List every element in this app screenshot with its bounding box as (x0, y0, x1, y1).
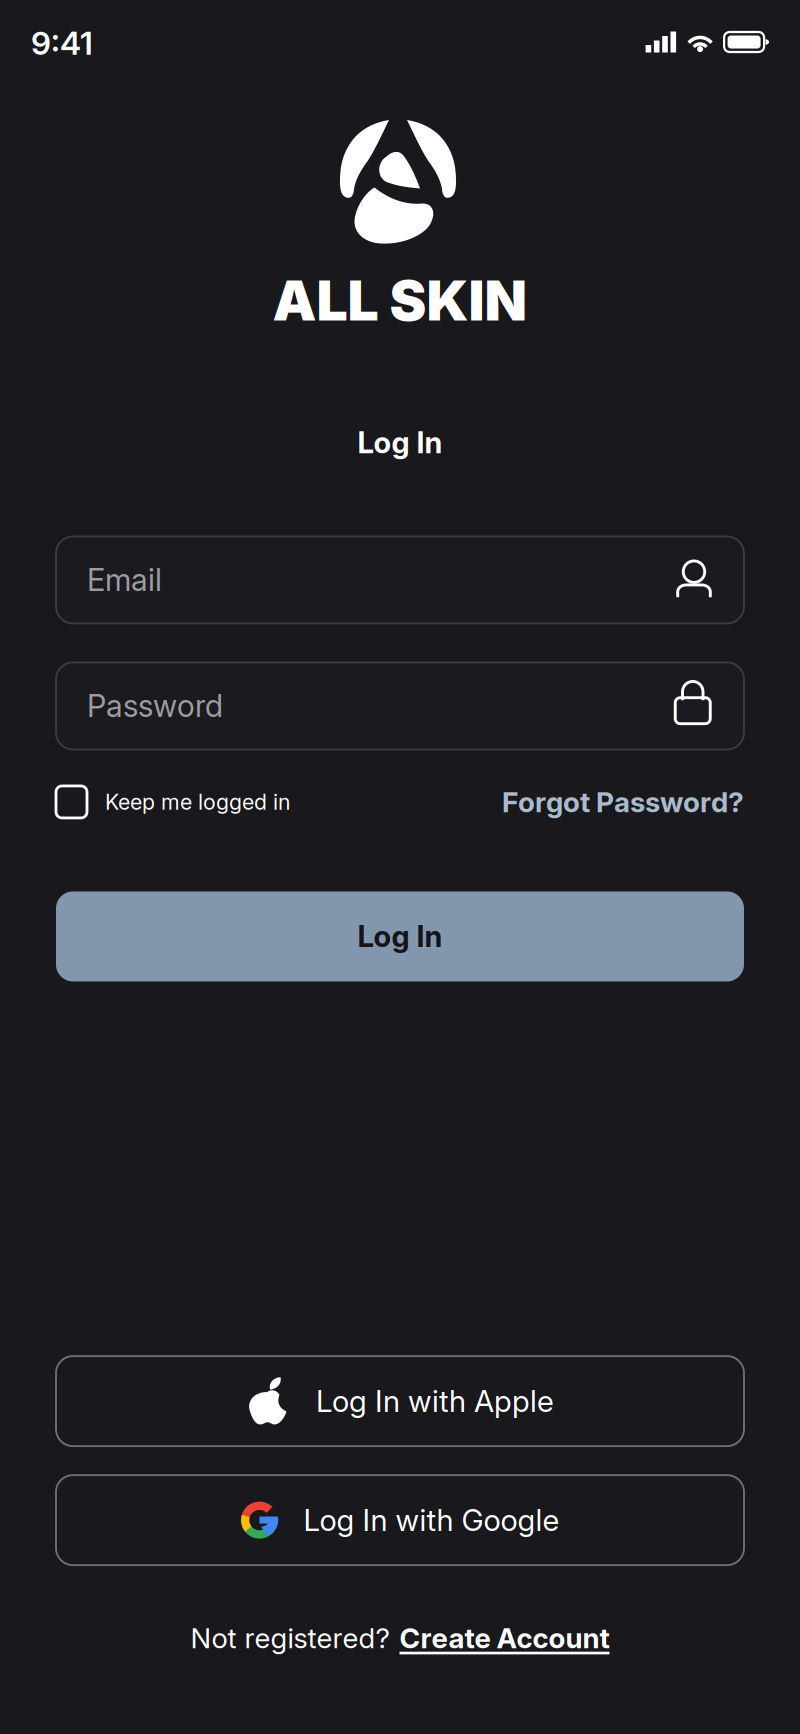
staticText: 9:41 (31, 24, 93, 62)
staticText: Email (87, 561, 162, 598)
staticText: Create Account (399, 1621, 609, 1655)
staticText: Password (87, 687, 223, 724)
button[interactable]: Email (56, 536, 744, 623)
staticText: Not registered? (190, 1621, 389, 1655)
staticText: ALL SKIN (272, 267, 527, 334)
button[interactable]: Log In with Google (56, 1475, 744, 1565)
button[interactable]: Password (56, 662, 744, 749)
button[interactable]: Log In (56, 891, 744, 981)
staticText: Keep me logged in (105, 789, 291, 815)
staticText: Log In with Apple (316, 1383, 554, 1419)
staticText: Forgot Password? (502, 785, 744, 819)
staticText: Log In (357, 425, 442, 460)
button[interactable]: Keep me logged in (56, 786, 291, 818)
button[interactable]: Not registered? (190, 1621, 609, 1655)
staticText: Log In with Google (303, 1502, 559, 1538)
button[interactable]: Forgot Password? (502, 785, 744, 819)
button[interactable]: Log In with Apple (56, 1356, 744, 1446)
staticText: Log In (357, 919, 442, 954)
